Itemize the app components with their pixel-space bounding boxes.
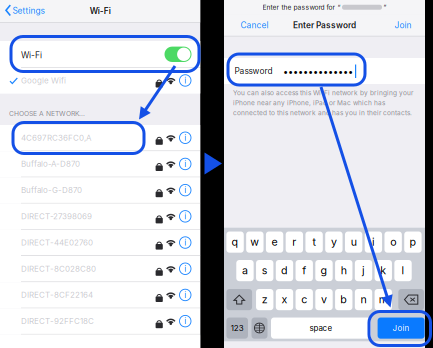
staticText: DIRECT-8C028C80: [21, 264, 96, 274]
staticText: ”: [383, 3, 386, 11]
button[interactable]: f: [296, 260, 313, 281]
staticText: Enter Password: [293, 20, 356, 30]
staticText: i: [184, 211, 186, 221]
staticText: i: [184, 289, 186, 300]
button[interactable]: DIRECT-44E02760: [0, 230, 200, 256]
button[interactable]: o: [384, 231, 402, 253]
staticText: i: [184, 263, 186, 274]
staticText: s: [262, 264, 268, 277]
button[interactable]: Next keyboard: [251, 317, 267, 339]
button[interactable]: Shift: [226, 289, 252, 310]
button[interactable]: e: [266, 231, 283, 253]
button[interactable]: Join: [384, 14, 420, 36]
staticText: p: [409, 235, 416, 248]
staticText: Buffalo-G-D870: [21, 185, 82, 195]
button[interactable]: Delete: [398, 289, 424, 310]
button[interactable]: c: [296, 289, 313, 310]
button[interactable]: x: [276, 289, 293, 310]
button[interactable]: DIRECT-8C028C80: [0, 256, 200, 282]
staticText: m: [379, 293, 388, 306]
staticText: v: [321, 293, 327, 306]
staticText: Buffalo-A-D870: [21, 159, 80, 169]
staticText: DIRECT-8CF22164: [21, 290, 93, 300]
staticText: t: [313, 235, 316, 248]
button[interactable]: q: [226, 231, 244, 253]
button[interactable]: y: [325, 231, 343, 253]
staticText: i: [184, 158, 186, 169]
staticText: DIRECT-44E02760: [21, 238, 93, 247]
staticText: n: [360, 293, 366, 306]
staticText: iPhone near any iPhone, iPad or Mac whic…: [233, 99, 385, 107]
button[interactable]: Cancel: [229, 14, 271, 36]
staticText: space: [309, 323, 332, 333]
button[interactable]: b: [335, 289, 352, 310]
staticText: i: [184, 75, 186, 85]
staticText: Enter the password for “: [262, 3, 340, 11]
button[interactable]: Join: [378, 317, 425, 339]
staticText: CHOOSE A NETWORK...: [9, 109, 85, 118]
staticText: Join: [394, 20, 411, 30]
button[interactable]: z: [256, 289, 273, 310]
button[interactable]: a: [236, 260, 254, 281]
button[interactable]: s: [256, 260, 273, 281]
button[interactable]: 4C697RC36FC0,A: [0, 125, 200, 151]
staticText: DIRECT-27398069: [21, 211, 92, 221]
button[interactable]: w: [246, 231, 264, 253]
staticText: Google Wifi: [21, 76, 66, 85]
button[interactable]: j: [355, 260, 372, 281]
button[interactable]: Buffalo-G-D870: [0, 177, 200, 204]
staticText: g: [320, 264, 327, 277]
button[interactable]: Google Wifi: [0, 68, 200, 93]
staticText: i: [184, 185, 186, 195]
staticText: i: [372, 235, 375, 248]
button[interactable]: Buffalo-A-D870: [0, 151, 200, 177]
button[interactable]: v: [315, 289, 333, 310]
button[interactable]: l: [394, 260, 412, 281]
staticText: r: [292, 235, 296, 248]
button[interactable]: m: [375, 289, 392, 310]
button[interactable]: h: [335, 260, 352, 281]
button[interactable]: u: [345, 231, 362, 253]
staticText: z: [262, 293, 268, 306]
staticText: Settings: [13, 6, 45, 16]
staticText: e: [272, 235, 278, 248]
staticText: DIRECT-92FFC18C: [21, 316, 94, 326]
staticText: You can also access this Wi-Fi network b…: [233, 89, 413, 97]
staticText: u: [351, 235, 357, 248]
button[interactable]: DIRECT-8CF22164: [0, 282, 200, 308]
staticText: Password: [234, 66, 272, 76]
staticText: h: [341, 264, 347, 277]
button[interactable]: DIRECT-27398069: [0, 204, 200, 230]
button[interactable]: p: [404, 231, 422, 253]
button[interactable]: Settings: [0, 0, 56, 22]
staticText: ••••••••••••••: [283, 66, 353, 77]
staticText: 4C697RC36FC0,A: [21, 133, 92, 143]
staticText: q: [232, 235, 239, 248]
staticText: x: [281, 293, 287, 306]
button[interactable]: r: [286, 231, 303, 253]
staticText: y: [331, 235, 337, 248]
button[interactable]: 123: [226, 317, 248, 339]
staticText: f: [302, 264, 306, 277]
staticText: connected to this network and has you in…: [233, 109, 412, 117]
button[interactable]: i: [365, 231, 382, 253]
button[interactable]: n: [355, 289, 372, 310]
button[interactable]: DIRECT-92FFC18C: [0, 308, 200, 335]
staticText: Wi-Fi: [21, 50, 42, 60]
staticText: c: [301, 293, 307, 306]
staticText: Wi-Fi: [90, 6, 111, 16]
staticText: Join: [393, 323, 410, 333]
staticText: i: [184, 237, 186, 248]
button[interactable]: d: [276, 260, 293, 281]
staticText: j: [362, 264, 365, 277]
button[interactable]: Wi-Fi: [0, 41, 200, 67]
button[interactable]: space: [271, 317, 371, 339]
button[interactable]: g: [315, 260, 333, 281]
staticText: i: [184, 316, 186, 326]
button[interactable]: t: [305, 231, 323, 253]
button[interactable]: k: [375, 260, 392, 281]
staticText: i: [184, 132, 186, 143]
